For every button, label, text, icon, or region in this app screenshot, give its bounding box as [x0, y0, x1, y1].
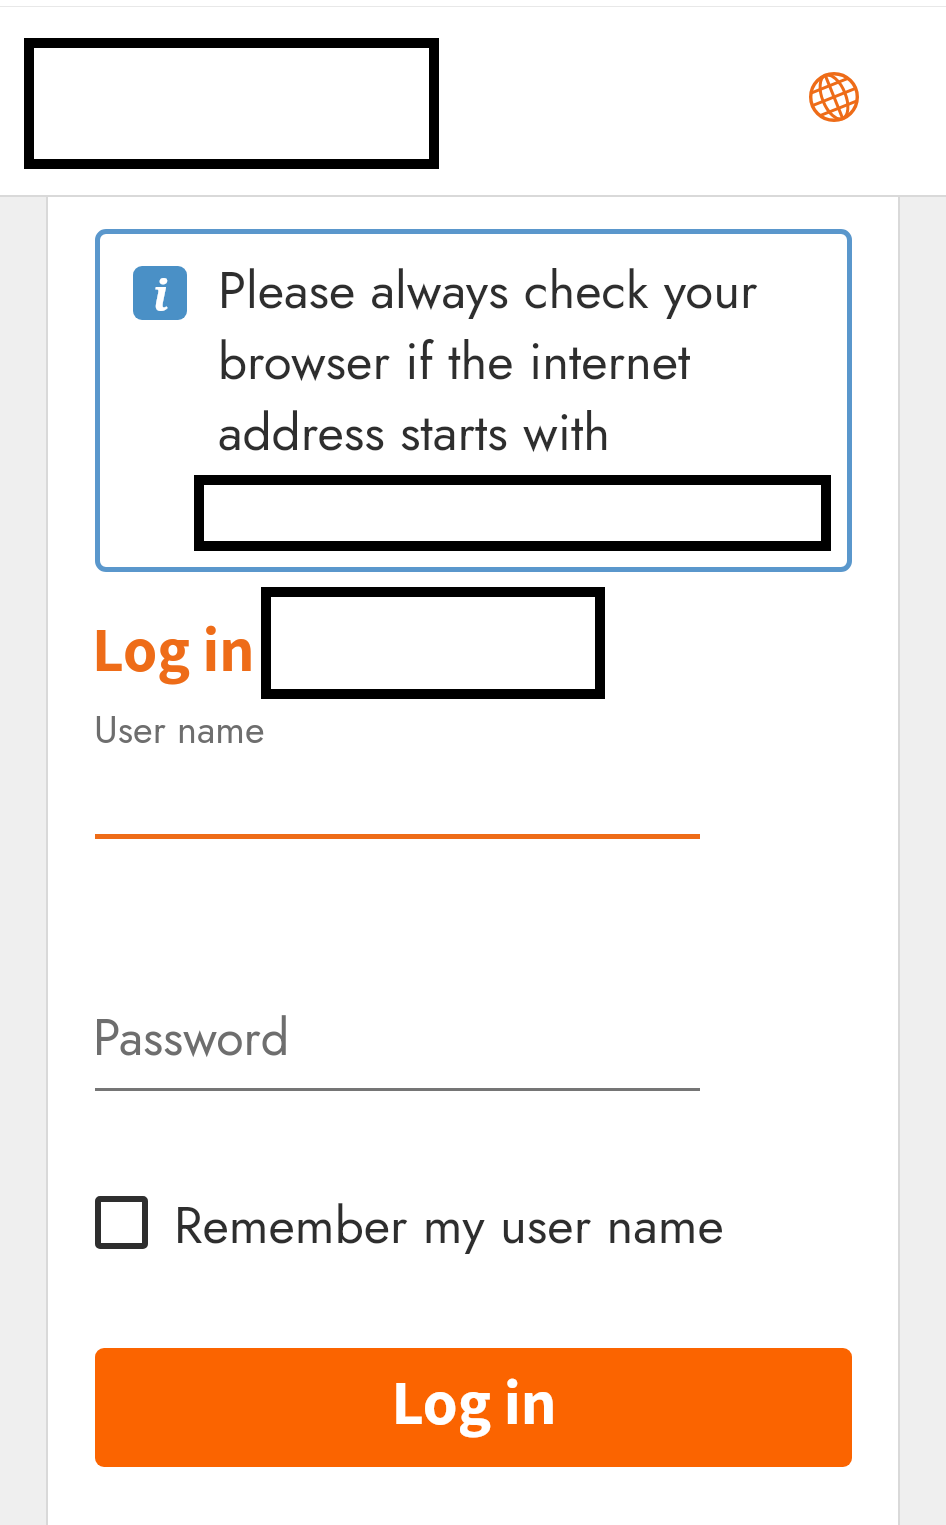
button[interactable]: Log in: [95, 1348, 852, 1467]
button[interactable]: Language: [801, 64, 867, 130]
button[interactable]: User name: [95, 695, 700, 839]
staticText: Please always check your browser if the …: [218, 253, 783, 469]
staticText: Log in: [92, 608, 255, 689]
staticText: i: [153, 266, 169, 319]
staticText: User name: [94, 702, 265, 757]
button[interactable]: Password: [95, 995, 700, 1091]
button[interactable]: Remember my user name: [95, 1188, 724, 1256]
staticText: Log in: [391, 1360, 557, 1442]
staticText: Password: [93, 1001, 290, 1073]
staticText: Remember my user name: [174, 1188, 724, 1256]
